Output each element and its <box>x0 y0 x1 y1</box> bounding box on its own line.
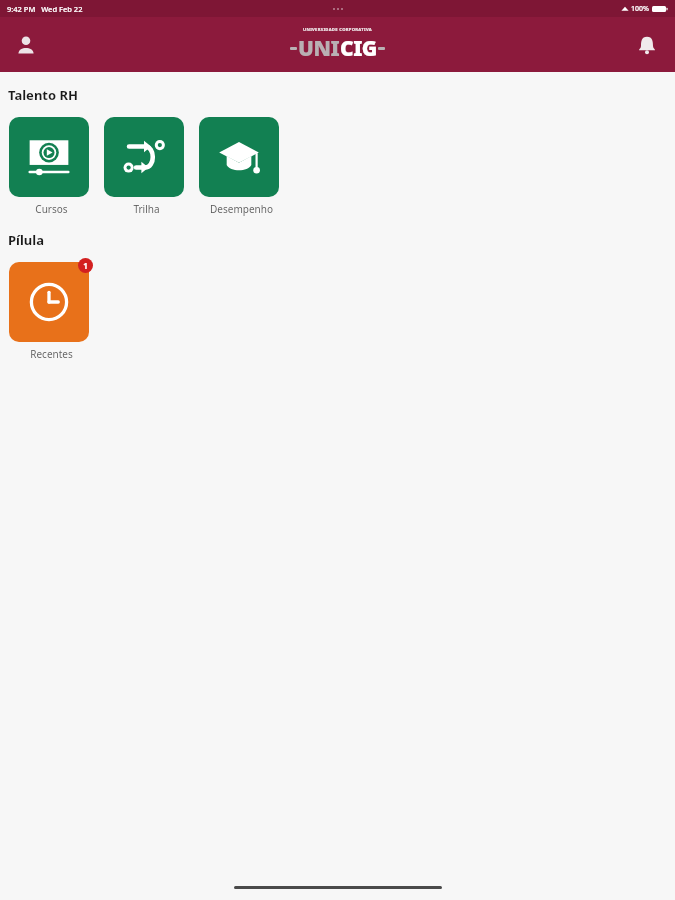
staticText: CIG <box>340 34 377 63</box>
button[interactable] <box>104 117 184 197</box>
staticText: UNI <box>298 34 340 63</box>
staticText: 100% <box>631 4 649 14</box>
staticText: Desempenho <box>210 202 273 216</box>
staticText: Cursos <box>35 202 68 216</box>
staticText: 1 <box>83 260 88 271</box>
staticText: Recentes <box>30 347 73 361</box>
staticText: UNIVERSIDADE CORPORATIVA <box>303 27 372 33</box>
staticText: Trilha <box>133 202 160 216</box>
button[interactable] <box>9 262 89 342</box>
button[interactable]: Notifications <box>631 29 663 61</box>
staticText: Talento RH <box>8 86 78 104</box>
staticText: 9:42 PM Wed Feb 22 <box>7 4 83 14</box>
staticText: Pílula <box>8 231 44 249</box>
button[interactable] <box>9 117 89 197</box>
button[interactable] <box>199 117 279 197</box>
button[interactable]: Profile <box>10 29 42 61</box>
